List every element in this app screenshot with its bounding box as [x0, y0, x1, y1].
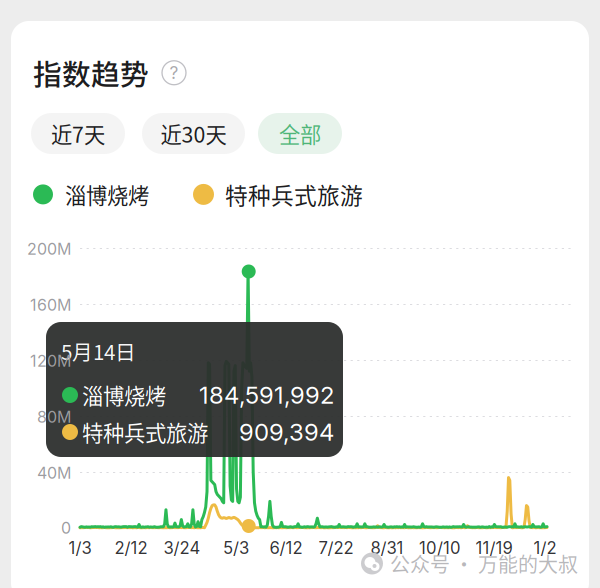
staticText: 公众号 · 万能的大叔: [390, 549, 578, 578]
staticText: 近30天: [160, 118, 226, 149]
staticText: 1/3: [68, 538, 91, 558]
staticText: 80M: [37, 407, 71, 427]
staticText: 特种兵式旅游: [82, 417, 208, 447]
staticText: 淄博烧烤: [65, 179, 149, 210]
staticText: 909,394: [239, 417, 334, 446]
staticText: 1/2: [533, 538, 556, 558]
staticText: 7/22: [318, 538, 353, 558]
staticText: 近7天: [51, 118, 105, 149]
staticText: 120M: [30, 351, 71, 371]
button[interactable]: 全部: [258, 113, 342, 154]
staticText: 160M: [30, 295, 71, 315]
staticText: 全部: [279, 118, 321, 149]
staticText: 11/19: [475, 538, 512, 558]
staticText: ?: [169, 62, 178, 83]
staticText: 2/12: [114, 538, 147, 558]
staticText: 5月14日: [61, 336, 136, 366]
staticText: 3/24: [163, 538, 200, 558]
staticText: 0: [61, 518, 71, 538]
staticText: 6/12: [269, 538, 302, 558]
button[interactable]: 近7天: [31, 113, 125, 154]
staticText: 200M: [27, 239, 71, 259]
button[interactable]: Help about index trend: [162, 61, 186, 85]
button[interactable]: 近30天: [142, 113, 245, 154]
staticText: 8/31: [370, 538, 403, 558]
staticText: 淄博烧烤: [82, 380, 166, 410]
staticText: 184,591,992: [199, 380, 334, 409]
staticText: 指数趋势: [33, 52, 149, 93]
staticText: 5/3: [223, 538, 249, 558]
staticText: 特种兵式旅游: [225, 178, 363, 211]
staticText: 40M: [37, 463, 71, 483]
staticText: 10/10: [419, 538, 461, 558]
